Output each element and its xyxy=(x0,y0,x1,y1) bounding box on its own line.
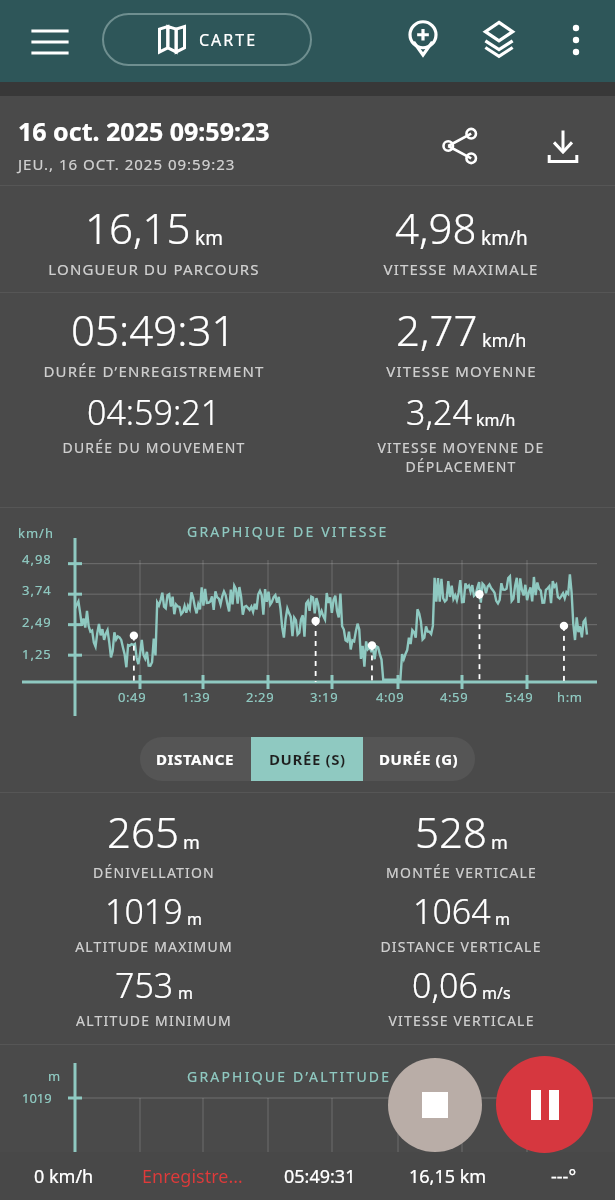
button[interactable]: 753 xyxy=(0,962,307,1030)
button[interactable]: DURÉE (S) xyxy=(251,737,363,781)
staticText: DISTANCE VERTICALE xyxy=(380,937,542,956)
button[interactable]: 1064 xyxy=(307,888,615,956)
staticText: 5:49 xyxy=(505,688,534,706)
button[interactable]: DURÉE (G) xyxy=(363,737,475,781)
staticText: 4:09 xyxy=(376,688,405,706)
staticText: 1064 xyxy=(413,888,491,934)
staticText: DISTANCE xyxy=(156,749,235,769)
button[interactable]: Layers xyxy=(473,14,525,66)
button[interactable]: 05:49:31 xyxy=(0,301,307,381)
staticText: LONGUEUR DU PARCOURS xyxy=(48,259,260,279)
button[interactable]: km/h xyxy=(0,508,615,726)
staticText: DURÉE (S) xyxy=(269,749,346,769)
button[interactable]: 528 xyxy=(307,803,615,882)
staticText: 16,15 xyxy=(85,199,191,256)
staticText: GRAPHIQUE D’ALTITUDE xyxy=(187,1067,392,1086)
staticText: VITESSE MOYENNE DE xyxy=(377,438,545,457)
staticText: MONTÉE VERTICALE xyxy=(386,863,537,882)
button[interactable]: Share xyxy=(432,118,488,174)
staticText: km xyxy=(195,225,223,251)
staticText: m xyxy=(495,908,510,930)
staticText: DURÉE (G) xyxy=(379,749,459,769)
button[interactable]: Stop xyxy=(388,1058,482,1152)
staticText: m xyxy=(491,830,508,855)
staticText: 528 xyxy=(415,803,487,860)
staticText: 16,15 km xyxy=(409,1164,487,1189)
button[interactable]: 2,77 xyxy=(307,301,615,381)
staticText: 16 oct. 2025 09:59:23 xyxy=(18,114,270,148)
staticText: km/h xyxy=(482,328,527,353)
staticText: 1019 xyxy=(105,888,183,934)
staticText: DURÉE DU MOUVEMENT xyxy=(62,438,246,457)
staticText: 0 km/h xyxy=(34,1164,94,1189)
staticText: 265 xyxy=(107,803,179,860)
staticText: 4,98 xyxy=(395,199,477,256)
staticText: VITESSE MOYENNE xyxy=(386,361,537,381)
staticText: 3:19 xyxy=(310,688,339,706)
button[interactable]: Pause xyxy=(496,1056,593,1153)
staticText: CARTE xyxy=(199,29,258,51)
staticText: 753 xyxy=(115,962,174,1008)
staticText: 1:39 xyxy=(182,688,211,706)
button[interactable]: More options xyxy=(550,14,602,66)
staticText: 1019 xyxy=(22,1089,52,1107)
button[interactable]: 0,06 xyxy=(307,962,615,1030)
staticText: DÉNIVELLATION xyxy=(93,863,215,882)
staticText: 0,06 xyxy=(412,962,478,1008)
staticText: ALTITUDE MAXIMUM xyxy=(75,937,233,956)
button[interactable]: 04:59:21 xyxy=(0,389,307,457)
staticText: m/s xyxy=(482,982,511,1004)
staticText: 2:29 xyxy=(246,688,275,706)
button[interactable]: 16 oct. 2025 09:59:23 xyxy=(0,96,615,185)
staticText: DÉPLACEMENT xyxy=(405,457,517,476)
button[interactable]: DISTANCE xyxy=(140,737,251,781)
staticText: 0:49 xyxy=(118,688,147,706)
button[interactable]: 265 xyxy=(0,803,307,882)
staticText: m xyxy=(187,908,202,930)
staticText: 05:49:31 xyxy=(71,301,236,358)
staticText: 2,77 xyxy=(396,301,478,358)
staticText: Enregistre… xyxy=(142,1164,243,1189)
staticText: 4:59 xyxy=(440,688,469,706)
staticText: 3,24 xyxy=(406,389,472,435)
staticText: 04:59:21 xyxy=(87,389,221,435)
staticText: km/h xyxy=(481,225,528,251)
button[interactable]: CARTE xyxy=(103,14,311,65)
staticText: m xyxy=(183,830,200,855)
staticText: ALTITUDE MINIMUM xyxy=(76,1011,232,1030)
staticText: 4,98 xyxy=(22,550,52,568)
staticText: VITESSE VERTICALE xyxy=(388,1011,535,1030)
staticText: 05:49:31 xyxy=(284,1164,356,1189)
button[interactable]: Add waypoint xyxy=(397,14,449,66)
staticText: JEU., 16 OCT. 2025 09:59:23 xyxy=(18,154,236,174)
staticText: 3,74 xyxy=(22,581,52,599)
staticText: GRAPHIQUE DE VITESSE xyxy=(187,522,389,541)
button[interactable]: 16,15 xyxy=(0,186,307,292)
button[interactable]: 1019 xyxy=(0,888,307,956)
staticText: km/h xyxy=(476,409,516,431)
staticText: m xyxy=(178,982,193,1004)
staticText: ---° xyxy=(551,1164,577,1189)
staticText: h:m xyxy=(557,688,583,706)
button[interactable]: Download xyxy=(535,118,591,174)
staticText: VITESSE MAXIMALE xyxy=(383,259,539,279)
button[interactable]: Menu xyxy=(24,16,76,68)
staticText: km/h xyxy=(18,524,54,542)
staticText: 1,25 xyxy=(22,645,52,663)
staticText: DURÉE D’ENREGISTREMENT xyxy=(43,361,265,381)
button[interactable]: 4,98 xyxy=(307,186,615,292)
button[interactable]: 3,24 xyxy=(307,389,615,476)
staticText: 2,49 xyxy=(22,613,52,631)
staticText: m xyxy=(48,1067,61,1085)
